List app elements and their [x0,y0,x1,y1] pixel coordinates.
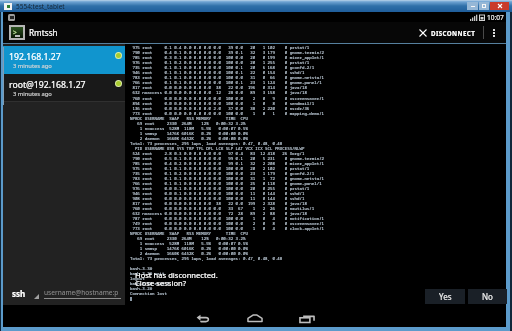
staticText: 735 root 0.1 0.1 0.0 0.0 0.0 0.0 100 0.1… [130,65,315,71]
button[interactable]: 192.168.1.27 [3,46,125,74]
staticText: bash-3.3# [130,266,153,272]
staticText: 192.168.1.27 [9,51,61,63]
staticText: 787 root 0.0 0.0 0.0 0.0 0.0 0.0 100 0.0… [130,216,325,222]
staticText: 1 noaccess 528M 118M 5.5% 0:00:07 0.5% [130,241,248,247]
staticText: 785 root 0.4 0.2 0.0 0.0 0.0 0.0 99 0.1 … [130,161,325,167]
staticText: 975 root 0.1 0.4 0.0 0.0 0.0 0.0 39 0.0 … [130,45,310,51]
staticText: 783 root 0.1 0.1 0.0 0.0 0.0 0.0 100 0.0… [130,75,325,81]
button[interactable]: No [468,289,507,304]
staticText: Close session? [135,278,186,288]
staticText: logout [130,276,145,282]
staticText: 976 root 0.1 0.2 0.0 0.0 0.0 0.0 100 0.0… [130,60,310,66]
staticText: 773 root 0.0 0.0 0.0 0.0 0.0 0.0 100 0.0… [130,226,325,232]
staticText: 1 smmsp 1476K 6016K 0.2% 0:00:00 0.0% [130,131,248,137]
staticText: Total: 73 processes, 295 lwps, load aver… [130,141,283,147]
staticText: 760 root 0.0 0.0 0.0 0.0 0.0 0.0 33 67 1… [130,206,315,212]
staticText: 632 noaccess 0.0 0.0 0.0 0.0 0.0 0.0 72 … [130,211,307,217]
button[interactable]: DISCONNECT [416,22,479,43]
staticText: 760 root 0.0 0.0 0.0 0.0 0.0 0.0 100 0.0… [130,96,325,102]
staticText: 5554:test_tablet [16,2,65,11]
staticText: 735 root 0.1 0.2 0.0 0.0 0.0 0.0 100 0.0… [130,171,315,177]
staticText: username@hostname:port [44,288,121,297]
staticText: root@192.168.1.27 [9,79,86,91]
staticText: 976 root 0.0 0.1 0.0 0.0 0.0 0.0 100 0.0… [130,186,310,192]
staticText: Connection lost [130,291,167,297]
button[interactable]: Yes [425,289,465,304]
button[interactable]: Home [237,308,273,328]
staticText: >_ [13,28,20,37]
staticText: No [482,291,493,302]
staticText: DISCONNECT [431,29,476,37]
staticText: 749 root 0.0 0.0 0.0 0.0 0.0 0.0 100 0.0… [130,221,325,227]
staticText: 817 root 0.0 0.0 0.0 0.0 0.0 38 22 0.0 1… [130,201,307,207]
staticText: bash-3.2# [130,286,153,292]
staticText: 790 root 0.5 0.1 0.0 0.0 0.0 0.0 99 0.1 … [130,156,325,162]
staticText: 1 noaccess 528M 118M 5.5% 0:00:07 0.5% [130,126,248,132]
staticText: 2 daemon 1660K 6452K 0.2% 0:00:00 0.0% [130,251,248,257]
staticText: 946 root 0.1 0.1 0.0 0.0 0.0 0.0 100 0.1… [130,70,305,76]
staticText: Host has disconnected. [135,270,218,280]
staticText: 946 root 0.0 0.1 0.0 0.0 0.0 0.0 100 0.0… [130,191,305,197]
staticText: 69 root 2330 264M 12% 0:00:32 3.2% [130,236,246,242]
staticText: 908 root 0.0 0.0 0.0 0.0 0.0 0.0 100 0.0… [130,196,305,202]
staticText: PID USERNAME USR SYS TRP TFL DFL LCK SLP… [130,146,305,152]
staticText: Rmtssh [29,27,58,38]
button[interactable]: Maximise [479,2,489,10]
button[interactable]: root@192.168.1.27 [3,74,125,102]
staticText: 1 smmsp 1476K 6016K 0.2% 0:00:00 0.0% [130,246,248,252]
button[interactable]: More options [484,22,504,43]
staticText: 773 root 0.0 0.0 0.0 0.0 0.0 0.0 100 0.0… [130,111,325,117]
staticText: 10:07 [487,13,504,22]
staticText: ssh [12,288,26,299]
staticText: NPROC USERNAME SWAP RSS MEMORY TIME CPU [130,231,248,237]
staticText: 69 root 2330 264M 12% 0:00:32 3.2% [130,121,246,127]
staticText: Yes [439,291,452,302]
staticText: bash-3.2# exit 5 [130,281,170,287]
button[interactable]: Minimise [467,2,478,10]
button[interactable]: Recent apps [289,308,325,328]
staticText: 790 root 0.4 0.1 0.0 0.0 0.0 0.0 39 0.1 … [130,50,325,56]
staticText: 785 root 0.3 0.1 0.0 0.0 0.0 0.0 100 0.0… [130,55,325,61]
staticText: 783 root 0.1 0.1 0.0 0.0 0.0 0.0 100 0.0… [130,176,325,182]
staticText: 894 root 0.0 0.0 0.0 0.0 0.0 0.0 100 0.0… [130,101,315,107]
staticText: 975 root 0.1 0.1 0.0 0.0 0.0 0.0 100 0.0… [130,166,310,172]
staticText: 3 minutes ago [13,62,52,70]
staticText: bash-3.3# exit [130,271,165,277]
staticText: 766 root 0.1 0.1 0.0 0.0 0.0 0.0 100 0.0… [130,181,322,187]
button[interactable]: Close [490,2,509,10]
staticText: 524 root 2.8 0.3 0.0 0.0 0.0 0.0 97 0.4 … [130,151,305,157]
staticText: 632 noaccess 0.0 0.0 0.0 0.0 0.0 12 28 0… [130,90,307,96]
staticText: Total: 73 processes, 295 lwps, load aver… [130,256,283,262]
staticText: 3 minutes ago [13,90,52,98]
staticText: NPROC USERNAME SWAP RSS MEMORY TIME CPU [130,116,248,122]
staticText: 817 root 0.0 0.0 0.0 0.0 0.0 38 22 0.0 1… [130,85,307,91]
staticText: 766 root 0.1 0.1 0.0 0.0 0.0 0.0 100 0.1… [130,80,322,86]
staticText: 2 daemon 1660K 6452K 0.2% 0:00:00 0.0% [130,136,248,142]
button[interactable]: Back [185,308,221,328]
staticText: 136 root 0.0 0.0 0.0 0.0 0.0 2.0 37 0.0 … [130,106,310,112]
